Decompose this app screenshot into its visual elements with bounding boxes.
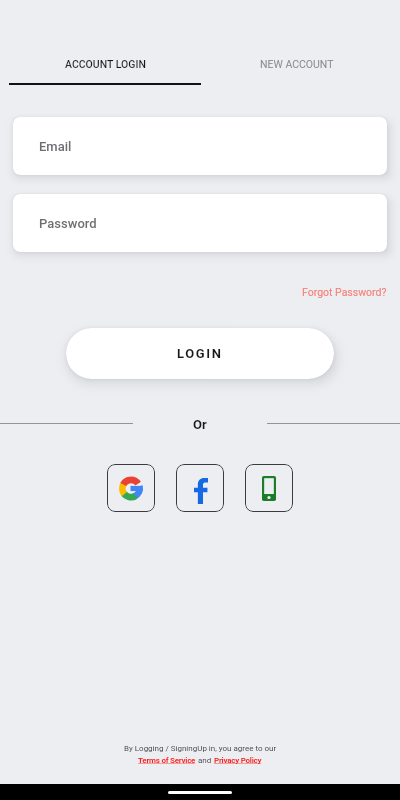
button[interactable]: Password xyxy=(13,194,387,252)
button[interactable]: LOGIN xyxy=(66,328,334,379)
staticText: By Logging / SigningUp in, you agree to … xyxy=(124,744,277,753)
button[interactable]: NEW ACCOUNT xyxy=(200,0,400,86)
staticText: NEW ACCOUNT xyxy=(260,58,334,70)
button[interactable]: Sign in with Google xyxy=(107,464,155,512)
staticText: Email xyxy=(39,139,72,154)
staticText: and xyxy=(196,756,214,765)
button[interactable]: Sign in with phone number xyxy=(245,464,293,512)
button[interactable]: Forgot Password? xyxy=(302,284,400,300)
button[interactable]: Email xyxy=(13,117,387,175)
button[interactable]: Privacy Policy xyxy=(214,756,262,765)
button[interactable]: ACCOUNT LOGIN xyxy=(0,0,200,86)
staticText: Or xyxy=(193,417,207,432)
button[interactable]: Terms of Service xyxy=(138,756,196,765)
staticText: Password xyxy=(39,216,97,231)
staticText: LOGIN xyxy=(177,346,223,361)
staticText: ACCOUNT LOGIN xyxy=(65,58,146,70)
button[interactable]: Sign in with Facebook xyxy=(176,464,224,512)
